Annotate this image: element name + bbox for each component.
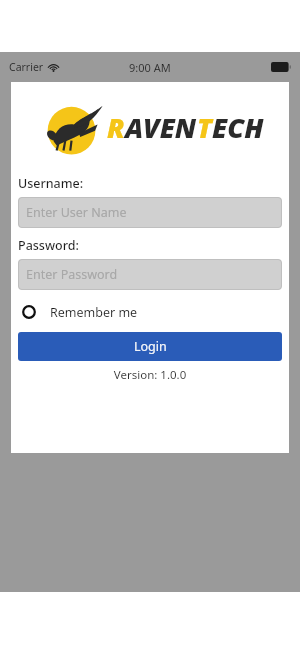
button[interactable]: Remember me: [18, 301, 282, 323]
button[interactable]: Login: [18, 332, 282, 361]
staticText: Enter User Name: [26, 204, 127, 221]
button[interactable]: Enter User Name: [18, 197, 282, 228]
staticText: R: [107, 109, 125, 146]
staticText: ECH: [212, 109, 264, 146]
staticText: T: [197, 109, 212, 146]
staticText: Remember me: [50, 304, 138, 321]
staticText: 9:00 AM: [129, 60, 171, 75]
staticText: Login: [134, 338, 167, 355]
staticText: Enter Password: [26, 266, 118, 283]
staticText: Carrier: [9, 60, 44, 74]
staticText: AVEN: [125, 109, 197, 146]
staticText: Username:: [18, 175, 84, 192]
button[interactable]: Enter Password: [18, 259, 282, 290]
staticText: Version: 1.0.0: [18, 367, 282, 383]
staticText: Password:: [18, 237, 79, 254]
